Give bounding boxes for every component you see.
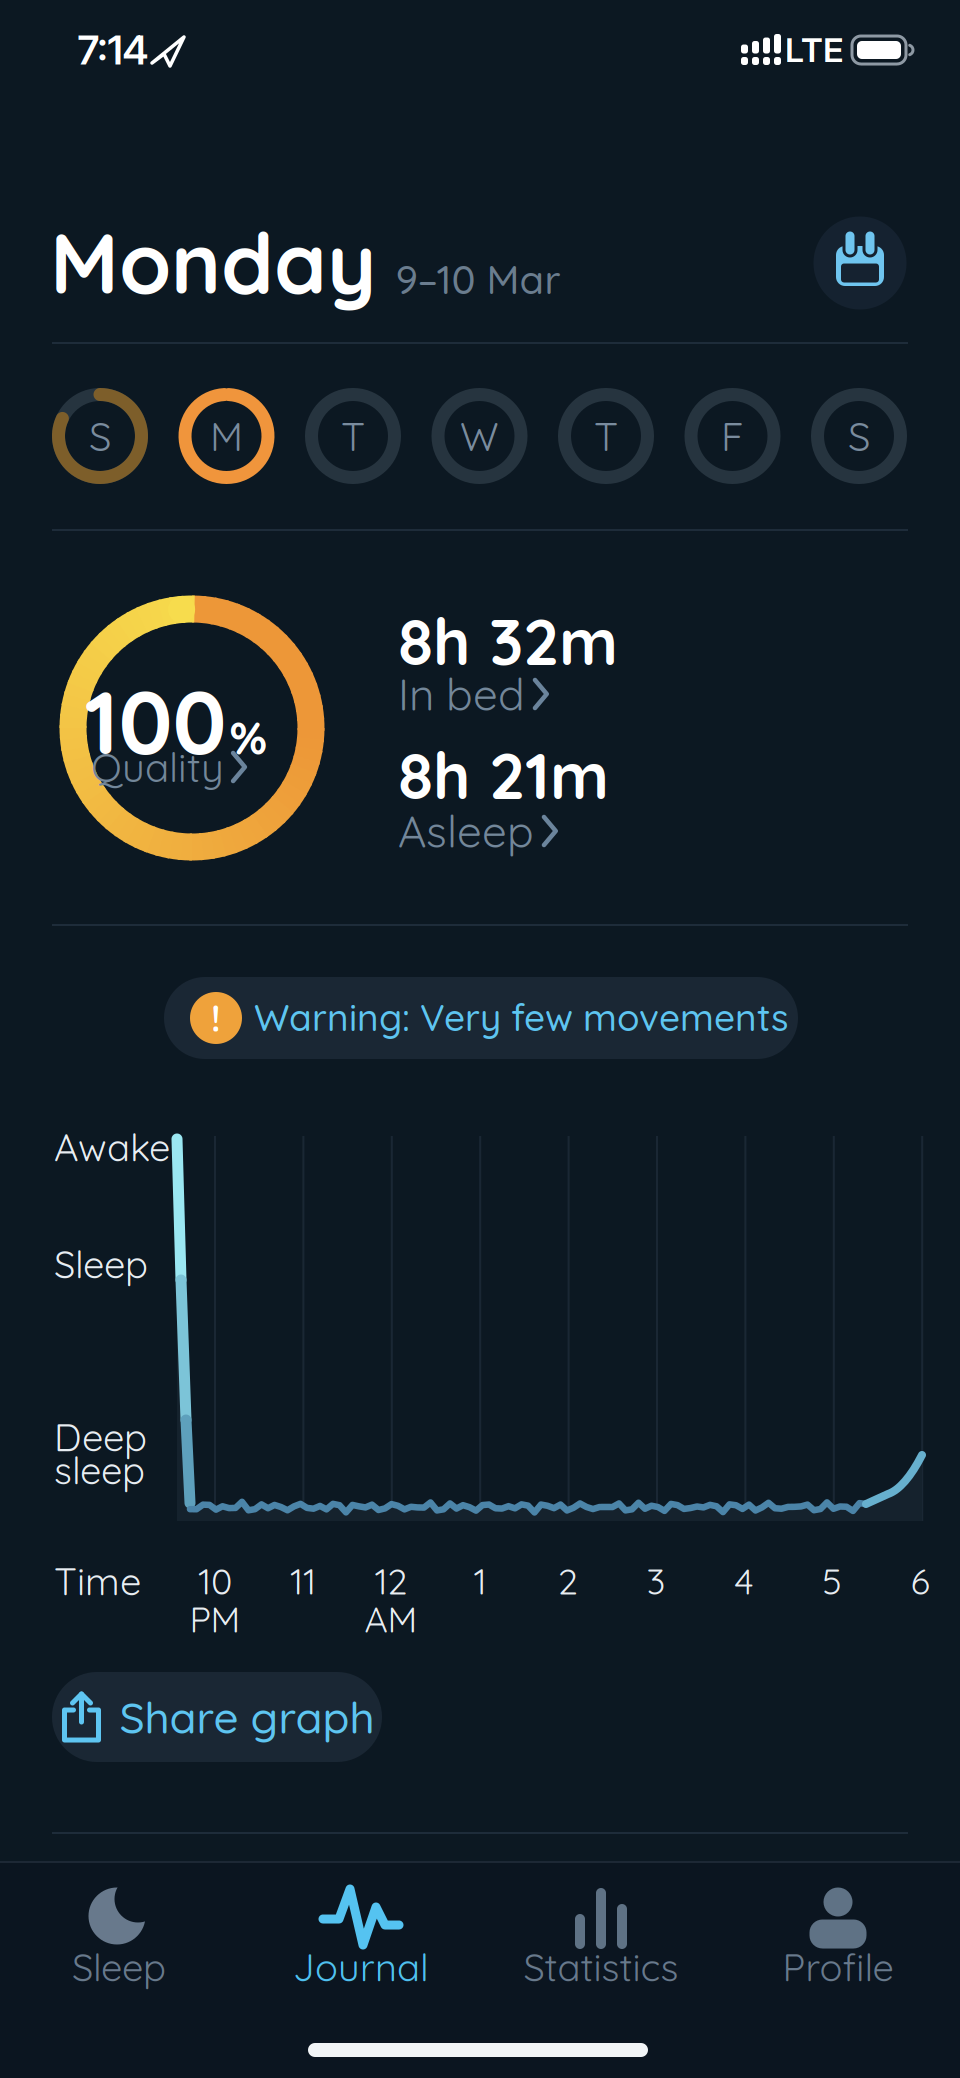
staticText: Share graph: [119, 1689, 374, 1744]
staticText: 1: [473, 1558, 486, 1603]
staticText: 6: [910, 1558, 929, 1603]
button[interactable]: W: [431, 388, 527, 484]
button[interactable]: T: [558, 388, 654, 484]
staticText: Asleep: [398, 803, 534, 858]
staticText: S: [848, 411, 870, 461]
staticText: Quality: [91, 742, 224, 792]
button[interactable]: !: [164, 977, 798, 1059]
staticText: M: [210, 411, 243, 461]
button[interactable]: S: [52, 388, 148, 484]
staticText: Monday: [50, 209, 376, 314]
staticText: 9–10 Mar: [395, 254, 560, 304]
button[interactable]: In bed: [398, 666, 698, 721]
staticText: Awake: [54, 1123, 170, 1171]
staticText: 2: [558, 1558, 578, 1603]
staticText: 7:14: [77, 26, 148, 74]
staticText: 11: [290, 1558, 316, 1603]
staticText: 12: [374, 1558, 407, 1603]
staticText: Time: [54, 1557, 141, 1605]
staticText: Statistics: [523, 1943, 678, 1991]
staticText: LTE: [785, 29, 843, 70]
staticText: S: [89, 411, 111, 461]
staticText: 3: [646, 1558, 665, 1603]
staticText: 8h 21m: [398, 735, 609, 815]
button[interactable]: Calendar: [813, 216, 906, 309]
staticText: sleep: [54, 1446, 145, 1494]
button[interactable]: Statistics: [486, 1870, 716, 2000]
button[interactable]: S: [811, 388, 907, 484]
staticText: %: [229, 708, 267, 766]
button[interactable]: T: [305, 388, 401, 484]
button[interactable]: F: [684, 388, 780, 484]
staticText: W: [460, 411, 499, 461]
staticText: PM: [189, 1596, 240, 1641]
staticText: T: [594, 411, 618, 461]
staticText: Sleep: [72, 1943, 166, 1991]
button[interactable]: M: [178, 388, 274, 484]
staticText: !: [211, 995, 221, 1040]
button[interactable]: Quality: [91, 742, 249, 792]
button[interactable]: Sleep: [4, 1870, 234, 2000]
button[interactable]: Asleep: [398, 803, 698, 858]
staticText: 10: [198, 1558, 232, 1603]
button[interactable]: Profile: [723, 1870, 953, 2000]
button[interactable]: Journal: [246, 1870, 476, 2000]
staticText: 5: [822, 1558, 842, 1603]
staticText: 4: [734, 1558, 753, 1603]
staticText: T: [341, 411, 365, 461]
staticText: Warning: Very few movements: [254, 994, 789, 1040]
staticText: AM: [364, 1596, 417, 1641]
staticText: Profile: [782, 1943, 893, 1991]
staticText: In bed: [398, 666, 525, 721]
staticText: 8h 32m: [398, 601, 618, 681]
button[interactable]: Share graph: [52, 1672, 382, 1762]
staticText: Sleep: [54, 1240, 148, 1288]
staticText: Journal: [293, 1943, 429, 1991]
staticText: 100: [84, 666, 226, 776]
staticText: F: [721, 411, 744, 461]
staticText: Deep: [54, 1413, 147, 1461]
